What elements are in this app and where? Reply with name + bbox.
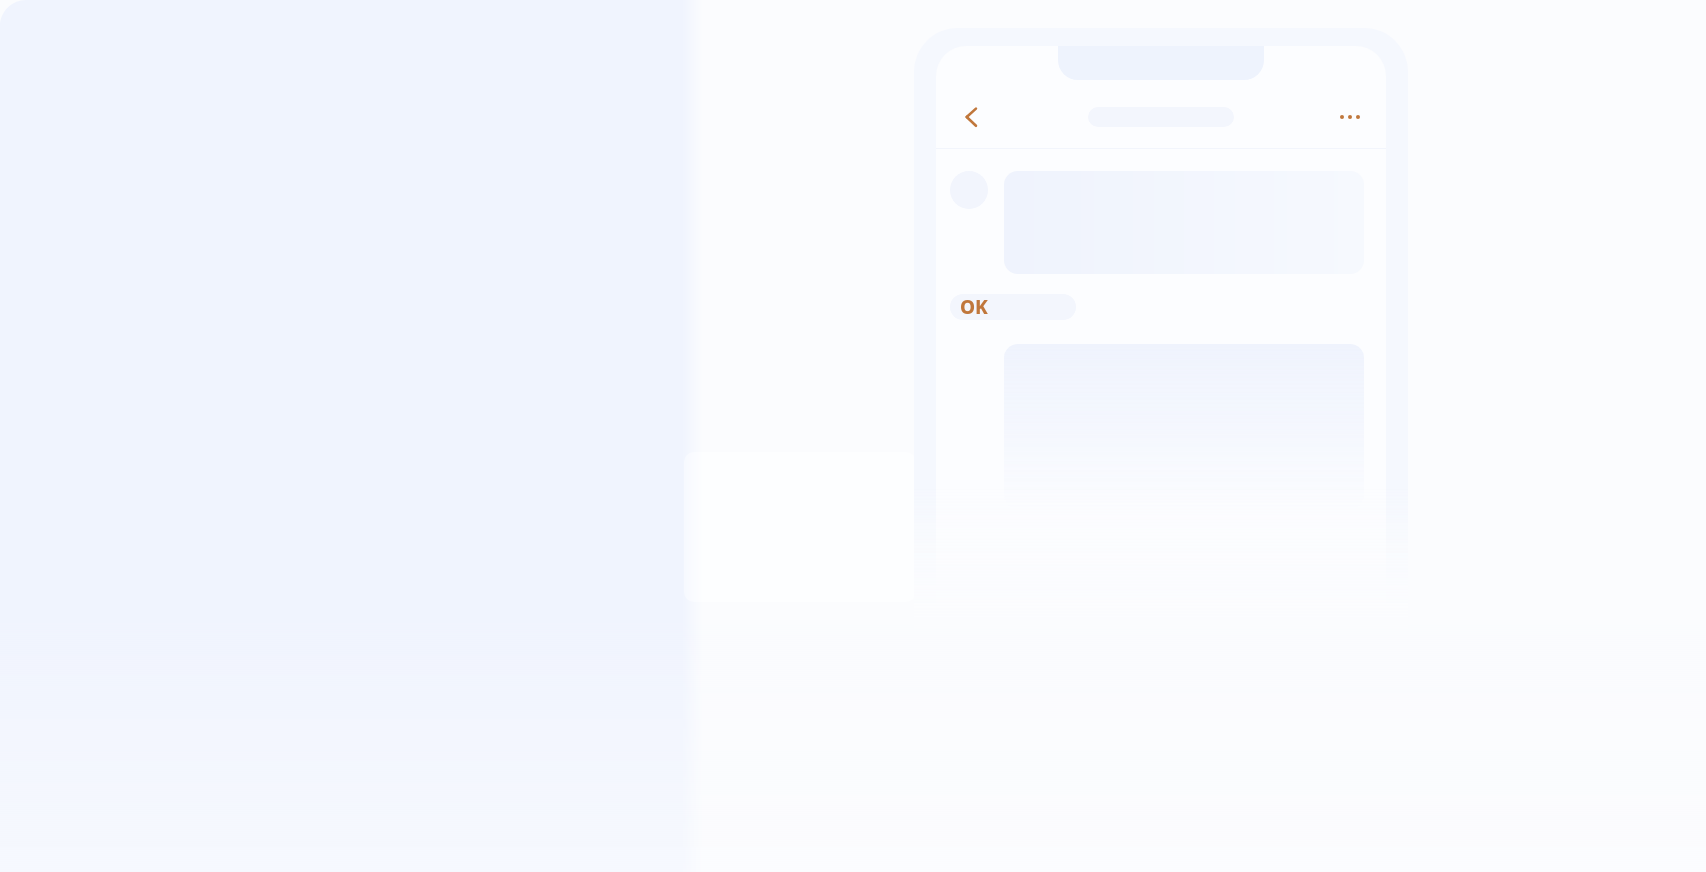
button[interactable] — [1004, 344, 1364, 509]
button[interactable]: More options — [1328, 95, 1372, 139]
button[interactable]: OK — [950, 294, 1076, 320]
button[interactable]: Contact avatar — [950, 171, 988, 209]
button[interactable]: Back — [950, 95, 994, 139]
staticText: OK — [960, 294, 988, 320]
